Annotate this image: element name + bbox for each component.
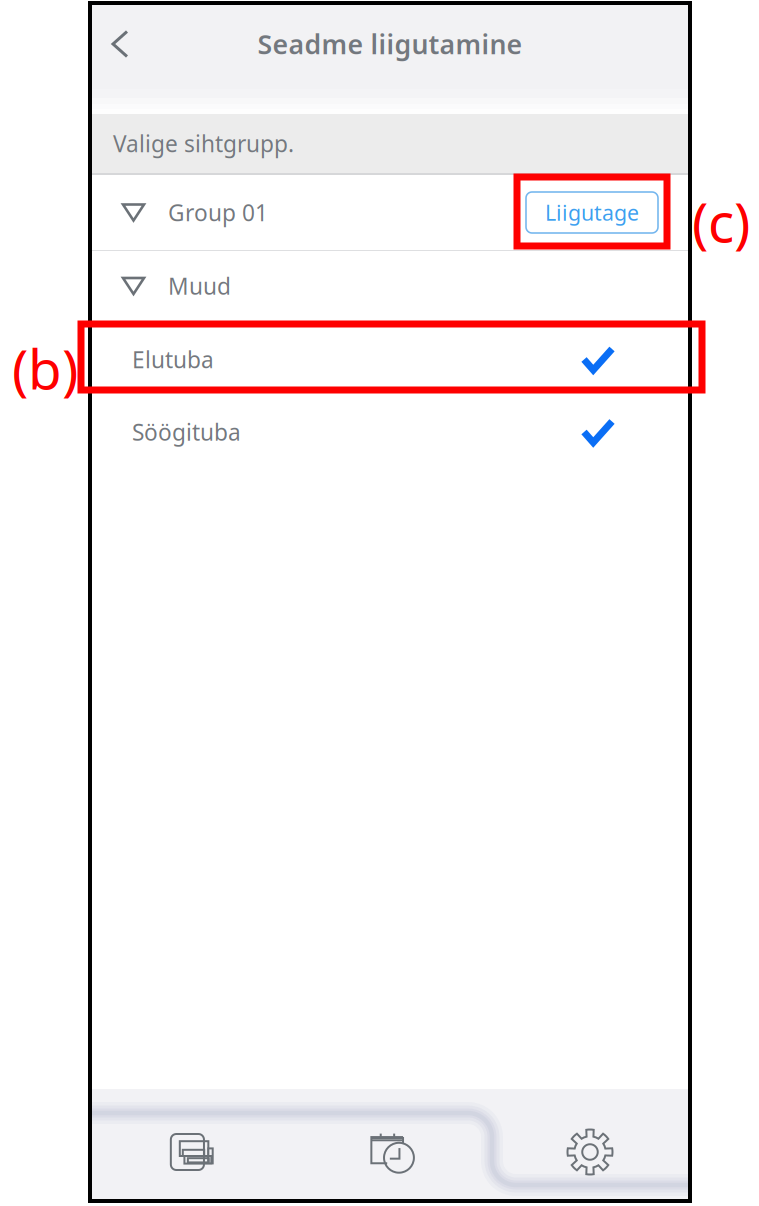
button[interactable]: Schedule [292,1089,492,1199]
staticText: (c) [692,185,750,258]
staticText: Muud [168,271,231,301]
staticText: (b) [12,332,78,405]
staticText: Group 01 [168,197,268,227]
button[interactable]: Devices [92,1089,292,1199]
staticText: Söögituba [132,417,241,447]
staticText: Valige sihtgrupp. [113,128,294,158]
staticText: Liigutage [545,198,639,227]
button[interactable]: Group 01 [92,175,688,250]
button[interactable]: Settings [492,1089,688,1199]
button[interactable]: Elutuba [92,322,688,397]
button[interactable]: Back [92,14,148,74]
staticText: Elutuba [132,344,214,374]
button[interactable]: Muud [92,251,688,321]
button[interactable]: Söögituba [92,397,688,467]
staticText: Seadme liigutamine [257,26,522,62]
